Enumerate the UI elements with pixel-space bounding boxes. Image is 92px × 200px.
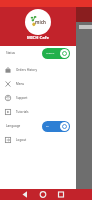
button[interactable]: Menu	[0, 77, 76, 91]
button[interactable]: Status	[0, 46, 76, 60]
staticText: Orders History	[16, 68, 37, 72]
button[interactable]: Tutorials	[0, 105, 76, 119]
staticText: Logout	[16, 138, 27, 142]
staticText: mich	[35, 19, 46, 25]
staticText: Support	[16, 96, 28, 100]
button[interactable]: Support	[0, 91, 76, 105]
button[interactable]: Language	[0, 119, 76, 133]
staticText: ONLINE	[46, 52, 55, 55]
button[interactable]: Orders History	[0, 63, 76, 77]
staticText: Language	[6, 124, 21, 128]
button[interactable]: Logout	[0, 133, 76, 147]
staticText: Menu	[16, 82, 25, 86]
staticText: Tutorials	[16, 110, 29, 114]
staticText: EN	[46, 125, 49, 128]
staticText: Status	[6, 51, 16, 55]
staticText: MICH Cafe	[27, 35, 49, 41]
